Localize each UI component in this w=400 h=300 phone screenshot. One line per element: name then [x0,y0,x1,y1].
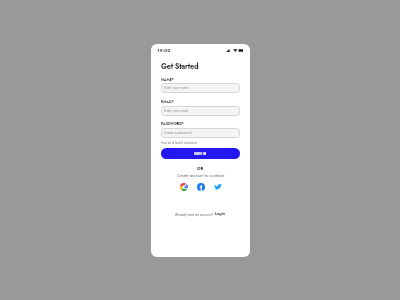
other: Signal, Wi-Fi and battery status [226,49,243,52]
staticText: EMAIL* [161,99,174,104]
staticText: Enter your name [164,85,189,90]
staticText: Create a password [164,130,192,135]
button[interactable]: Sign in with Facebook [197,183,205,191]
staticText: 19:02 [157,47,171,54]
button[interactable]: Login [215,211,226,217]
button[interactable]: Sign in with Twitter [214,183,222,191]
staticText: Create account to continue [177,173,225,179]
button[interactable]: Enter your email [161,106,240,116]
button[interactable]: Enter your name [161,83,240,93]
button[interactable]: Sign in with Google [180,183,188,191]
staticText: PASSWORD* [161,121,184,126]
staticText: Must be at least 8 characters [161,141,197,145]
button[interactable]: Create a password [161,128,240,138]
staticText: OR [197,166,204,172]
staticText: Enter your email [164,108,189,113]
staticText: Get Started [161,61,199,72]
staticText: Already have an account? [175,212,214,217]
staticText: SIGN IN [194,152,207,156]
staticText: NAME* [161,77,174,82]
button[interactable]: SIGN IN [161,148,240,159]
